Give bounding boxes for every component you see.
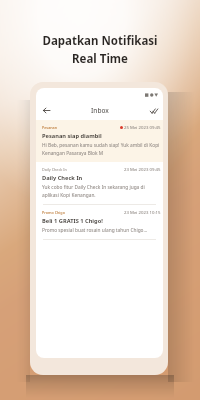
button[interactable]: Mark all as read — [147, 104, 160, 117]
staticText: Pesanan siap diambil — [42, 132, 102, 140]
staticText: Promo Chigo — [42, 210, 65, 215]
button[interactable]: Pesanan — [36, 120, 163, 162]
staticText: Pesanan — [42, 125, 58, 130]
staticText: Dapatkan Notifikasi — [42, 33, 158, 49]
staticText: Beli 1 GRATIS 1 Chigo! — [42, 217, 103, 225]
button[interactable]: Promo Chigo — [36, 205, 163, 239]
staticText: Daily Check In — [42, 174, 83, 182]
staticText: 23 Mei 2023 09:45 — [124, 166, 161, 172]
button[interactable]: Daily Check In — [36, 162, 163, 204]
staticText: 23 Mei 2023 10:15 — [124, 209, 161, 215]
button[interactable]: Back — [40, 104, 53, 117]
staticText: Promo spesial buat rosain ulang tahun Ch… — [42, 227, 148, 234]
staticText: Kenangan Pasaraya Blok M — [42, 150, 104, 157]
staticText: Real Time — [72, 51, 128, 67]
staticText: Inbox — [91, 106, 109, 115]
staticText: Yuk cobo fitur Daily Check In sekarang j… — [42, 184, 145, 191]
staticText: aplikasi Kopi Kenangan. — [42, 192, 96, 199]
staticText: Daily Check In — [42, 167, 67, 172]
staticText: Hi Beb, pesanan kamu sudah siap! Yuk amb… — [42, 142, 160, 149]
staticText: 25 Mei 2023 09:45 — [124, 124, 161, 130]
